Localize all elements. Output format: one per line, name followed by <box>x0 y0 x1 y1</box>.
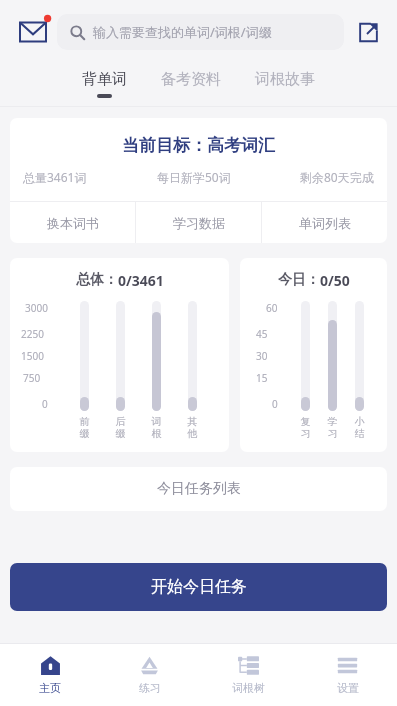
staticText: 单词列表 <box>299 215 351 231</box>
staticText: 今日： <box>278 271 320 289</box>
staticText: 60 <box>266 301 278 315</box>
button[interactable]: 开始今日任务 <box>10 563 387 611</box>
staticText: 30 <box>256 349 268 363</box>
staticText: 2250 <box>21 327 44 341</box>
staticText: 学习数据 <box>173 215 225 231</box>
button[interactable]: 今日任务列表 <box>10 467 387 511</box>
staticText: 750 <box>23 371 41 385</box>
button[interactable]: 单词列表 <box>262 202 387 243</box>
button[interactable]: 背单词 <box>80 64 129 106</box>
staticText: 设置 <box>337 681 359 695</box>
staticText: 总量3461词 <box>23 169 87 185</box>
staticText: 当前目标： <box>122 135 207 156</box>
staticText: 背单词 <box>82 70 127 89</box>
staticText: 词根树 <box>232 681 265 695</box>
staticText: 输入需要查找的单词/词根/词缀 <box>93 23 272 41</box>
staticText: 复习 <box>300 415 311 440</box>
staticText: 每日新学50词 <box>157 169 231 185</box>
staticText: 学习 <box>327 415 338 440</box>
staticText: 总体： <box>76 271 118 289</box>
staticText: 剩余80天完成 <box>300 169 374 185</box>
staticText: 0 <box>42 397 48 411</box>
button[interactable]: 输入需要查找的单词/词根/词缀 <box>57 14 344 50</box>
staticText: 3000 <box>25 301 48 315</box>
staticText: 前缀 <box>79 415 90 440</box>
staticText: 高考词汇 <box>207 135 275 156</box>
staticText: 15 <box>256 371 268 385</box>
button[interactable]: 备考资料 <box>159 64 223 106</box>
staticText: 词根故事 <box>255 70 315 89</box>
staticText: 今日任务列表 <box>157 480 241 498</box>
button[interactable]: 学习数据 <box>136 202 261 243</box>
staticText: 0/3461 <box>118 271 164 290</box>
staticText: 45 <box>256 327 268 341</box>
staticText: 小结 <box>354 415 365 440</box>
staticText: 备考资料 <box>161 70 221 89</box>
staticText: 1500 <box>21 349 44 363</box>
staticText: 词根 <box>151 415 162 440</box>
button[interactable]: Messages <box>14 12 54 52</box>
staticText: 主页 <box>39 681 61 695</box>
staticText: 换本词书 <box>47 215 99 231</box>
button[interactable]: 主页 <box>0 644 100 706</box>
staticText: 练习 <box>139 681 161 695</box>
staticText: 后缀 <box>115 415 126 440</box>
button[interactable]: Share <box>352 16 384 48</box>
staticText: 其他 <box>187 415 198 440</box>
staticText: 0/50 <box>320 271 350 290</box>
staticText: 开始今日任务 <box>151 577 247 597</box>
button[interactable]: 词根故事 <box>253 64 317 106</box>
button[interactable]: 设置 <box>298 644 397 706</box>
staticText: 0 <box>272 397 278 411</box>
button[interactable]: 词根树 <box>199 644 298 706</box>
button[interactable]: 换本词书 <box>10 202 135 243</box>
button[interactable]: 练习 <box>100 644 199 706</box>
